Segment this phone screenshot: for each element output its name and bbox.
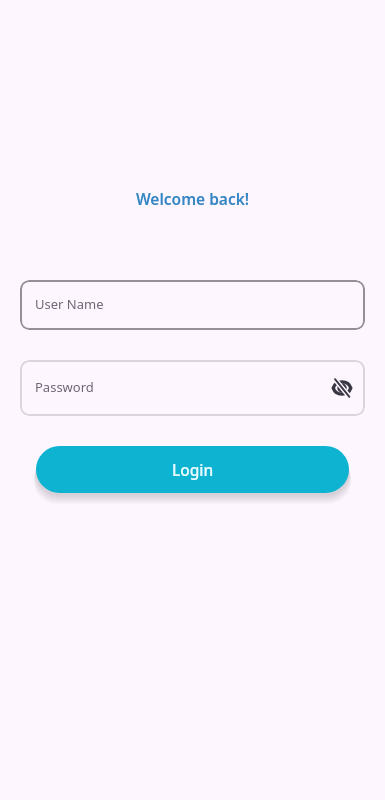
staticText: Welcome back!: [0, 188, 385, 209]
staticText: Password: [35, 378, 94, 396]
staticText: Login: [172, 459, 214, 480]
staticText: User Name: [35, 295, 104, 313]
button[interactable]: Password: [20, 360, 365, 416]
button[interactable]: Show password: [329, 375, 355, 401]
button[interactable]: Login: [36, 446, 349, 493]
button[interactable]: User Name: [20, 280, 365, 330]
